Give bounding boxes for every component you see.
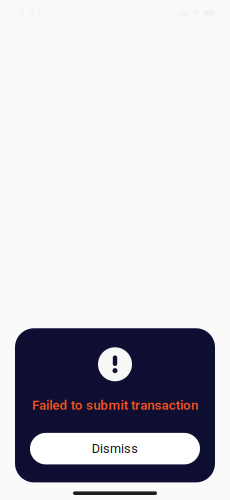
- button[interactable]: Dismiss: [30, 433, 200, 464]
- staticText: Failed to submit transaction: [32, 397, 198, 413]
- staticText: Dismiss: [92, 441, 138, 456]
